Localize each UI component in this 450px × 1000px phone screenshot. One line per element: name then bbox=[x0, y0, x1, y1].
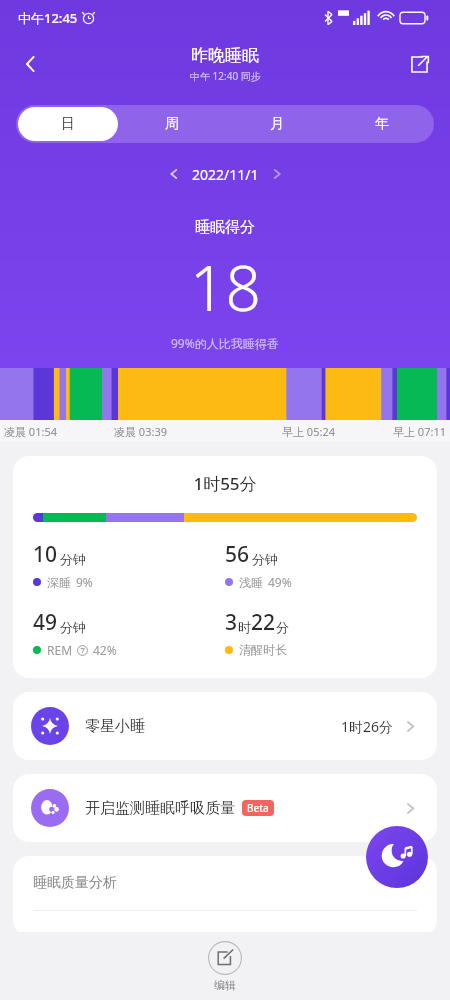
staticText: 56 bbox=[225, 540, 250, 569]
button[interactable]: 编辑 bbox=[208, 941, 242, 992]
staticText: 分钟 bbox=[252, 551, 278, 567]
button[interactable]: 月 bbox=[226, 107, 327, 141]
staticText: 22 bbox=[251, 608, 276, 637]
button[interactable]: 零星小睡 bbox=[13, 692, 437, 760]
staticText: 42% bbox=[93, 642, 117, 658]
staticText: 1时26分 bbox=[341, 717, 394, 736]
button[interactable]: Back bbox=[0, 38, 62, 90]
staticText: 零星小睡 bbox=[85, 717, 145, 736]
staticText: 早上 07:11 bbox=[393, 424, 446, 439]
staticText: 昨晚睡眠 bbox=[191, 45, 259, 66]
staticText: 年 bbox=[375, 115, 389, 133]
staticText: 月 bbox=[270, 115, 284, 133]
staticText: 2022/11/1 bbox=[192, 165, 259, 184]
staticText: 中午 12:40 同步 bbox=[190, 69, 261, 83]
button[interactable]: Share bbox=[388, 38, 450, 90]
staticText: REM bbox=[47, 642, 73, 658]
staticText: 凌晨 03:39 bbox=[114, 424, 167, 439]
button[interactable]: 1时55分 bbox=[13, 456, 437, 678]
button[interactable]: Next day bbox=[263, 159, 293, 189]
button[interactable]: 年 bbox=[331, 107, 432, 141]
staticText: 18 bbox=[190, 245, 261, 329]
button[interactable]: Sleep music bbox=[366, 826, 428, 888]
staticText: 周 bbox=[165, 115, 179, 133]
button[interactable]: 开启监测睡眠呼吸质量 bbox=[13, 774, 437, 842]
staticText: 9% bbox=[76, 574, 93, 590]
button[interactable]: 周 bbox=[122, 107, 222, 141]
staticText: 10 bbox=[33, 540, 58, 569]
button[interactable]: 日 bbox=[18, 107, 118, 141]
staticText: 日 bbox=[61, 115, 75, 133]
staticText: 分钟 bbox=[60, 551, 86, 567]
staticText: 浅睡 bbox=[239, 575, 263, 590]
staticText: 99%的人比我睡得香 bbox=[171, 335, 279, 351]
staticText: 凌晨 01:54 bbox=[4, 424, 57, 439]
staticText: 49% bbox=[268, 574, 292, 590]
staticText: 中午12:45 bbox=[18, 9, 78, 27]
staticText: 早上 05:24 bbox=[282, 424, 335, 439]
staticText: 编辑 bbox=[214, 978, 236, 992]
staticText: 睡眠得分 bbox=[195, 218, 255, 237]
staticText: 清醒时长 bbox=[239, 642, 287, 657]
staticText: 深睡 bbox=[47, 575, 71, 590]
staticText: 1时55分 bbox=[33, 472, 417, 495]
staticText: 睡眠质量分析 bbox=[33, 874, 117, 892]
staticText: 3 bbox=[225, 608, 238, 637]
staticText: 时 bbox=[238, 619, 251, 635]
button[interactable]: 睡眠质量分析 bbox=[13, 856, 437, 936]
staticText: 开启监测睡眠呼吸质量 bbox=[85, 799, 235, 818]
staticText: 分钟 bbox=[60, 619, 86, 635]
button[interactable]: Previous day bbox=[158, 159, 188, 189]
staticText: 49 bbox=[33, 608, 58, 637]
staticText: 分 bbox=[276, 619, 289, 635]
staticText: Beta bbox=[247, 801, 269, 815]
